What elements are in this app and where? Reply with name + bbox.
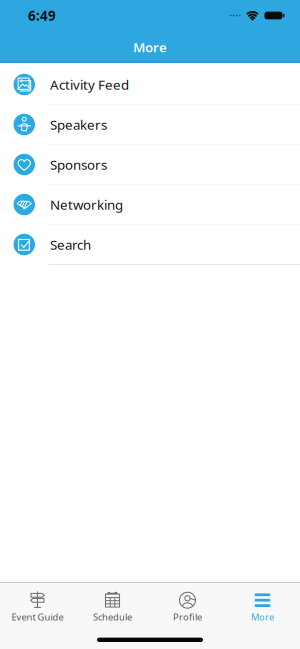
- button[interactable]: Event Guide: [0, 583, 75, 623]
- button[interactable]: Search: [0, 224, 300, 264]
- button[interactable]: More: [225, 583, 300, 623]
- button[interactable]: Activity Feed: [0, 64, 300, 104]
- button[interactable]: Networking: [0, 184, 300, 224]
- staticText: More: [133, 38, 167, 56]
- staticText: 6:49: [28, 7, 56, 24]
- staticText: Search: [50, 236, 91, 253]
- staticText: Sponsors: [50, 156, 107, 173]
- staticText: Schedule: [93, 611, 132, 623]
- staticText: Event Guide: [11, 611, 63, 623]
- staticText: Speakers: [50, 116, 107, 133]
- button[interactable]: Schedule: [75, 583, 150, 623]
- staticText: Networking: [50, 196, 123, 213]
- staticText: Activity Feed: [50, 76, 129, 93]
- button[interactable]: Profile: [150, 583, 225, 623]
- button[interactable]: Speakers: [0, 104, 300, 144]
- button[interactable]: Sponsors: [0, 144, 300, 184]
- staticText: More: [251, 611, 274, 623]
- staticText: Profile: [173, 611, 202, 623]
